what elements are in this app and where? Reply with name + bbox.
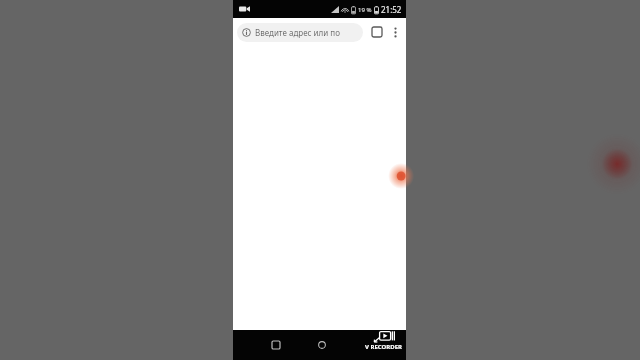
staticText: 21:52 [381,4,402,15]
button[interactable]: Switch tabs [367,22,387,42]
button[interactable]: Введите адрес или по [237,23,363,42]
button[interactable]: Home [311,334,333,356]
button[interactable]: More options [387,24,403,40]
staticText: V RECORDER [365,343,402,351]
button[interactable]: Recent apps [265,334,287,356]
staticText: 19 % [358,6,372,14]
staticText: Введите адрес или по [255,27,340,38]
